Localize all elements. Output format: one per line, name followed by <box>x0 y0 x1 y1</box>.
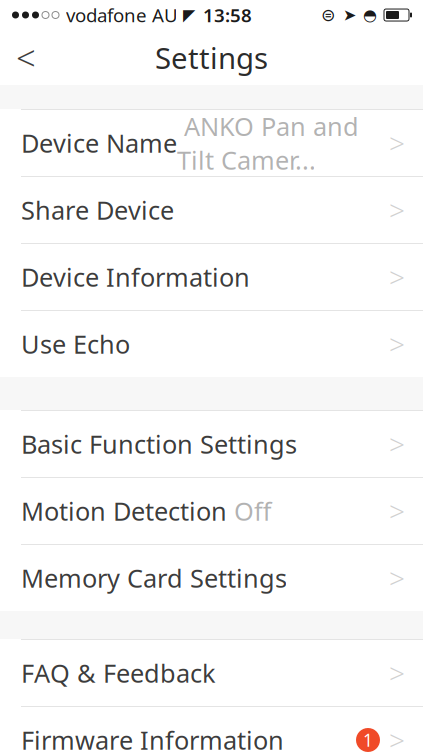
button[interactable]: Memory Card Settings <box>0 545 423 611</box>
button[interactable]: Basic Function Settings <box>0 411 423 477</box>
staticText: FAQ & Feedback <box>21 656 216 690</box>
staticText: ⊜ <box>321 5 336 25</box>
staticText: < <box>16 34 36 80</box>
staticText: Basic Function Settings <box>21 427 297 461</box>
staticText: > <box>389 559 405 597</box>
button[interactable]: Device Name <box>0 110 423 176</box>
staticText: Settings <box>155 38 268 77</box>
staticText: ➤ <box>343 6 356 24</box>
staticText: > <box>389 425 405 463</box>
staticText: Device Name <box>21 126 177 160</box>
button[interactable]: FAQ & Feedback <box>0 640 423 706</box>
staticText: > <box>389 654 405 692</box>
staticText: ANKO Pan and Tilt Camer... <box>177 109 359 177</box>
staticText: vodafone AU <box>66 3 178 27</box>
button[interactable]: Device Information <box>0 244 423 310</box>
button[interactable]: Share Device <box>0 177 423 243</box>
staticText: Share Device <box>21 193 174 227</box>
button[interactable]: Firmware Information <box>0 707 423 754</box>
button[interactable]: Back <box>0 30 52 84</box>
staticText: > <box>389 325 405 363</box>
button[interactable]: Use Echo <box>0 311 423 377</box>
staticText: Memory Card Settings <box>21 561 287 595</box>
staticText: Firmware Information <box>21 723 284 754</box>
staticText: 13:58 <box>203 3 252 27</box>
staticText: 1 <box>363 728 373 751</box>
staticText: ◓ <box>363 6 377 24</box>
staticText: Off <box>227 494 271 528</box>
staticText: > <box>389 492 405 530</box>
staticText: Use Echo <box>21 327 130 361</box>
staticText: Device Information <box>21 260 250 294</box>
staticText: Motion Detection <box>21 494 227 528</box>
button[interactable]: Motion Detection <box>0 478 423 544</box>
staticText: > <box>389 258 405 296</box>
staticText: ◤ <box>183 6 195 24</box>
staticText: > <box>389 721 405 754</box>
staticText: > <box>389 191 405 229</box>
staticText: > <box>389 124 405 162</box>
